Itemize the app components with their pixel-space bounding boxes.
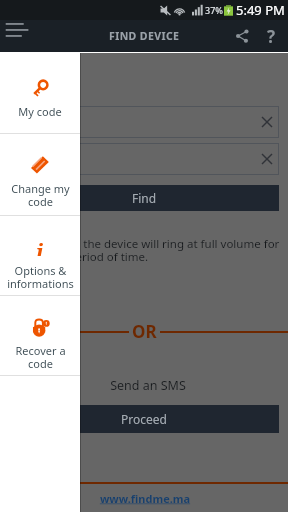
- staticText: Proceed: [121, 411, 167, 427]
- button[interactable]: Change my code: [0, 134, 80, 216]
- button[interactable]: Recover a code: [0, 296, 80, 376]
- staticText: 5:49 PM: [236, 1, 285, 19]
- staticText: a period of time.: [59, 249, 149, 265]
- button[interactable]: Clear: [262, 117, 272, 127]
- staticText: Find: [132, 190, 157, 206]
- staticText: Recover a code: [15, 343, 66, 371]
- button[interactable]: www.findme.ma: [1, 491, 288, 506]
- staticText: 37%: [205, 4, 223, 16]
- button[interactable]: i: [0, 216, 80, 296]
- button[interactable]: Clear: [9, 143, 279, 175]
- staticText: Change my code: [11, 181, 70, 209]
- staticText: i: [36, 238, 44, 256]
- staticText: ?: [267, 25, 276, 47]
- button[interactable]: Clear: [262, 154, 272, 164]
- staticText: FIND DEVICE: [109, 29, 180, 43]
- staticText: My code: [18, 104, 62, 119]
- staticText: Options & informations: [7, 263, 74, 291]
- button[interactable]: Share: [231, 25, 253, 47]
- button[interactable]: Clear: [9, 106, 279, 138]
- staticText: OR: [132, 320, 157, 343]
- button[interactable]: My code: [0, 53, 80, 134]
- button[interactable]: Help: [260, 25, 282, 47]
- staticText: When found, the device will ring at full…: [9, 236, 280, 252]
- button[interactable]: Open navigation drawer: [0, 20, 30, 52]
- staticText: Send an SMS: [4, 377, 288, 394]
- button[interactable]: Proceed: [9, 405, 279, 433]
- button[interactable]: Find: [9, 185, 279, 211]
